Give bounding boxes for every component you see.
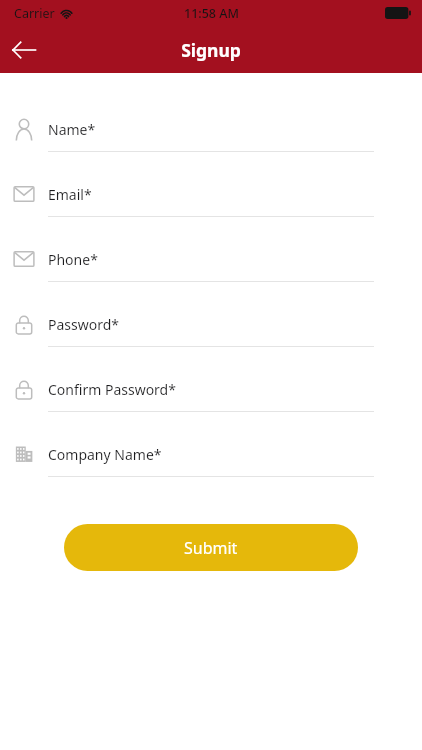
button[interactable]: Password* xyxy=(0,302,422,367)
staticText: 11:58 AM xyxy=(184,5,239,22)
staticText: Password* xyxy=(48,315,120,334)
staticText: Submit xyxy=(184,537,238,559)
staticText: Phone* xyxy=(48,250,98,269)
button[interactable]: Submit xyxy=(64,524,358,571)
staticText: Confirm Password* xyxy=(48,380,176,399)
staticText: Carrier xyxy=(14,5,55,22)
button[interactable]: Name* xyxy=(0,107,422,172)
staticText: Signup xyxy=(181,38,241,62)
button[interactable]: Email* xyxy=(0,172,422,237)
button[interactable]: Confirm Password* xyxy=(0,367,422,432)
button[interactable]: Phone* xyxy=(0,237,422,302)
button[interactable]: Company Name* xyxy=(0,432,422,497)
staticText: Name* xyxy=(48,120,96,139)
staticText: Company Name* xyxy=(48,445,162,464)
button[interactable]: Back xyxy=(0,26,48,73)
staticText: Email* xyxy=(48,185,92,204)
